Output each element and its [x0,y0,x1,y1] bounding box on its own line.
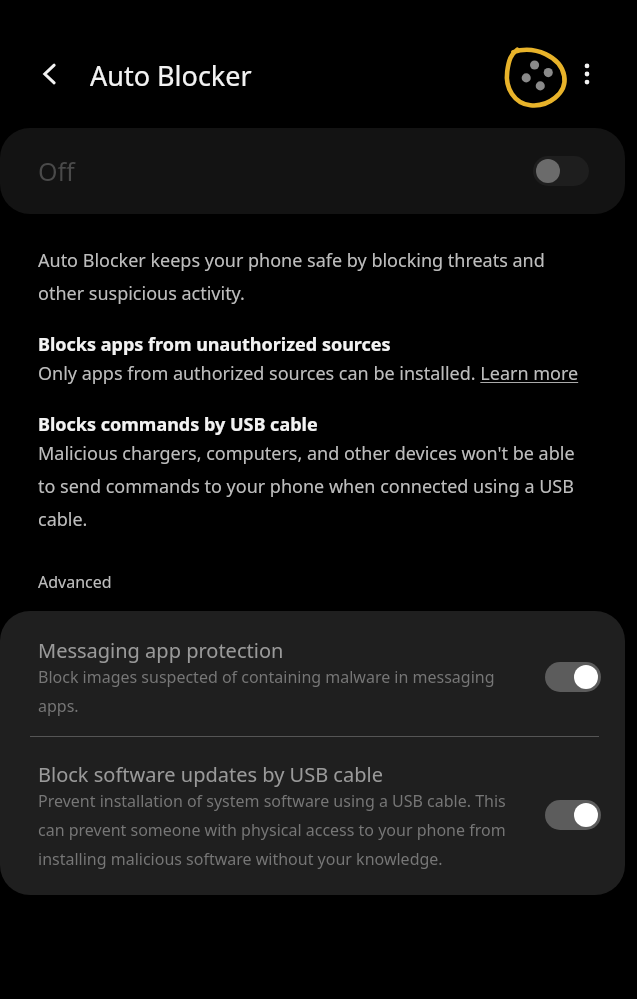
staticText: Advanced [38,571,112,593]
staticText: Blocks commands by USB cable [38,412,318,437]
staticText: Malicious chargers, computers, and other… [38,441,587,531]
staticText: Prevent installation of system software … [38,790,529,869]
button[interactable]: Back [26,50,74,98]
staticText: Block software updates by USB cable [38,761,383,788]
staticText: Blocks apps from unauthorized sources [38,332,391,357]
staticText: Auto Blocker [90,57,252,94]
button[interactable]: Off [0,128,625,214]
button[interactable]: Block software updates by USB cable [0,737,625,895]
button[interactable]: Highlighted options [500,38,576,114]
staticText: Off [38,154,75,188]
button[interactable]: Only apps from authorized sources can be… [38,361,579,386]
staticText: Messaging app protection [38,637,284,664]
button[interactable]: Messaging app protection [0,611,625,736]
staticText: Block images suspected of containing mal… [38,666,529,716]
staticText: Auto Blocker keeps your phone safe by bl… [38,248,587,305]
button[interactable]: More options [565,52,609,96]
